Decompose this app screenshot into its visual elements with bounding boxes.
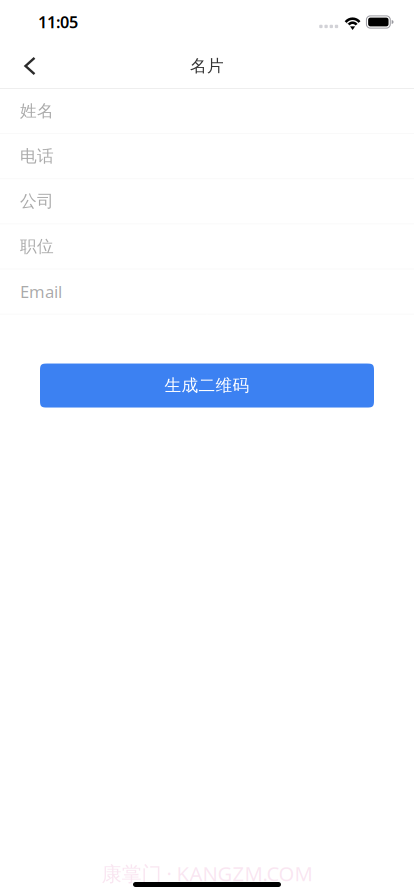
staticText: 生成二维码 xyxy=(164,375,249,396)
staticText: 公司 xyxy=(20,191,54,212)
button[interactable]: 电话 xyxy=(0,134,414,179)
staticText: 电话 xyxy=(20,146,54,166)
staticText: 名片 xyxy=(190,56,224,76)
staticText: 职位 xyxy=(20,236,54,257)
staticText: 康掌门 · KANGZM.COM xyxy=(101,860,312,887)
staticText: Email xyxy=(20,280,62,303)
button[interactable]: Back xyxy=(8,44,52,88)
button[interactable]: 职位 xyxy=(0,224,414,269)
button[interactable]: 姓名 xyxy=(0,89,414,134)
staticText: 11:05 xyxy=(38,11,78,33)
button[interactable]: Email xyxy=(0,269,414,314)
button[interactable]: 公司 xyxy=(0,179,414,224)
staticText: 姓名 xyxy=(20,101,54,121)
button[interactable]: 生成二维码 xyxy=(40,363,374,407)
